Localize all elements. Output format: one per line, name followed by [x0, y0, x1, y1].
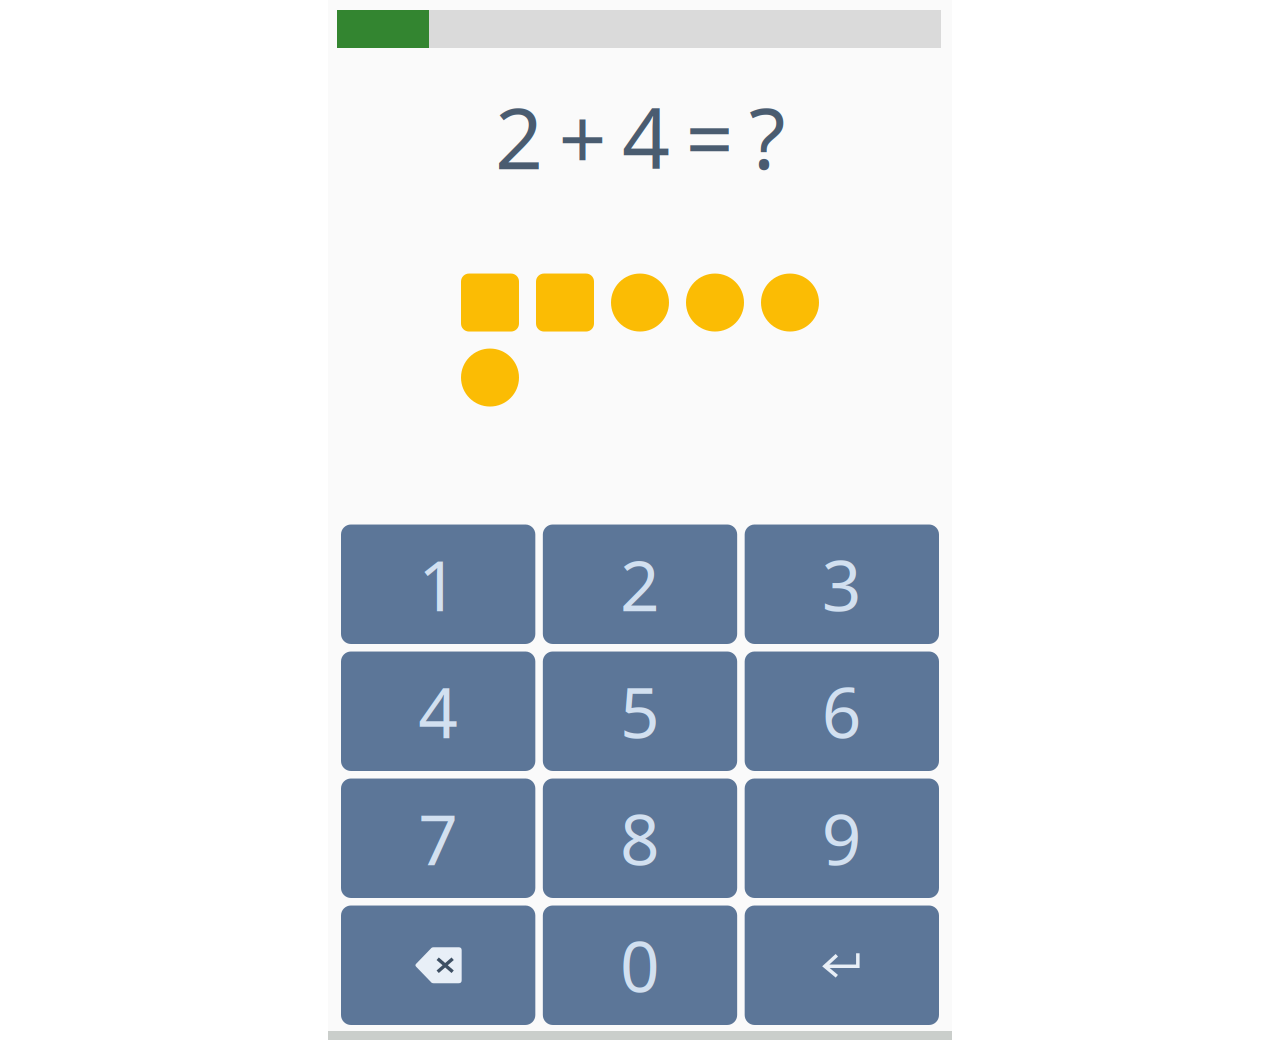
staticText: 4	[622, 81, 670, 192]
staticText: 4	[418, 665, 458, 757]
staticText: =	[685, 81, 733, 192]
staticText: 5	[620, 665, 660, 757]
button[interactable]: 6	[745, 651, 939, 771]
button[interactable]: 0	[543, 905, 737, 1025]
button[interactable]: 9	[745, 778, 939, 898]
button[interactable]: 3	[745, 524, 939, 644]
staticText: 1	[418, 538, 458, 630]
button[interactable]: 8	[543, 778, 737, 898]
staticText: 7	[418, 792, 458, 884]
staticText: 2	[620, 538, 660, 630]
staticText: 8	[620, 792, 660, 884]
staticText: +	[558, 81, 606, 192]
button[interactable]: 4	[341, 651, 535, 771]
button[interactable]: 1	[341, 524, 535, 644]
button[interactable]: Enter	[745, 905, 939, 1025]
staticText: 3	[822, 538, 862, 630]
staticText: 6	[822, 665, 862, 757]
button[interactable]: 2	[543, 524, 737, 644]
staticText: 0	[620, 919, 660, 1011]
button[interactable]: 5	[543, 651, 737, 771]
staticText: ?	[749, 81, 785, 192]
button[interactable]: Delete	[341, 905, 535, 1025]
staticText: 2	[495, 81, 543, 192]
staticText: 9	[822, 792, 862, 884]
button[interactable]: 7	[341, 778, 535, 898]
